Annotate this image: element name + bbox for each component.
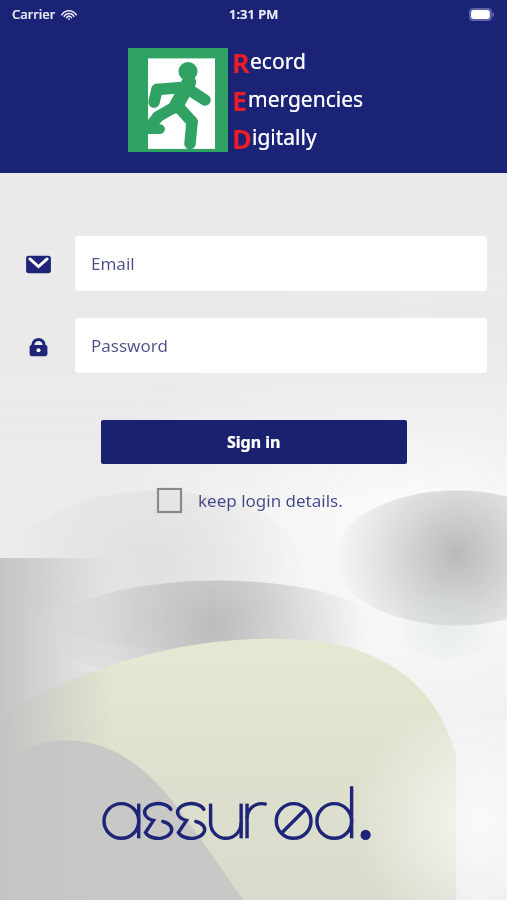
staticText: igitally xyxy=(252,123,317,152)
staticText: 1:31 PM xyxy=(229,5,279,23)
staticText: R xyxy=(232,44,250,78)
other: Password xyxy=(22,330,54,362)
staticText: keep login details. xyxy=(198,489,343,512)
staticText: mergencies xyxy=(248,85,364,114)
button[interactable]: keep login details. xyxy=(150,485,351,516)
staticText: E xyxy=(232,82,248,116)
staticText: D xyxy=(232,120,252,154)
staticText: Carrier xyxy=(12,5,56,23)
staticText: Email xyxy=(91,252,135,275)
button[interactable]: Email xyxy=(75,236,487,291)
other: Email xyxy=(22,248,54,280)
staticText: Password xyxy=(91,334,168,357)
staticText: ecord xyxy=(250,47,306,76)
button[interactable]: Sign in xyxy=(101,420,407,464)
button[interactable]: Password xyxy=(75,318,487,373)
staticText: Sign in xyxy=(227,431,281,453)
